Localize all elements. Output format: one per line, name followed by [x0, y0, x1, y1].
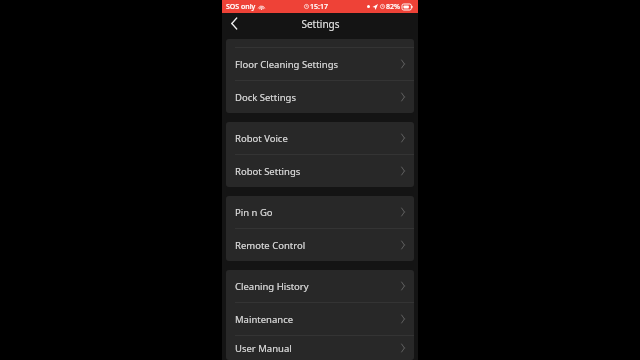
button[interactable]: Pin n Go: [226, 196, 414, 228]
staticText: Robot Settings: [235, 165, 301, 178]
staticText: User Manual: [235, 342, 292, 355]
staticText: Settings: [301, 17, 340, 31]
button[interactable]: Cleaning History: [226, 270, 414, 302]
button[interactable]: Dock Settings: [226, 81, 414, 113]
staticText: 82%: [386, 2, 400, 12]
button[interactable]: Floor Cleaning Settings: [226, 48, 414, 80]
button[interactable]: User Manual: [226, 336, 414, 360]
staticText: Maintenance: [235, 313, 294, 326]
staticText: Dock Settings: [235, 91, 296, 104]
staticText: Pin n Go: [235, 206, 273, 219]
button[interactable]: Remote Control: [226, 229, 414, 261]
button[interactable]: Back: [222, 13, 246, 34]
button[interactable]: Maintenance: [226, 303, 414, 335]
button[interactable]: Robot Settings: [226, 155, 414, 187]
staticText: 15:17: [310, 2, 328, 12]
staticText: SOS only: [226, 2, 256, 12]
staticText: Floor Cleaning Settings: [235, 58, 339, 71]
staticText: Remote Control: [235, 239, 306, 252]
staticText: Cleaning History: [235, 280, 309, 293]
button[interactable]: Robot Voice: [226, 122, 414, 154]
staticText: Robot Voice: [235, 132, 288, 145]
